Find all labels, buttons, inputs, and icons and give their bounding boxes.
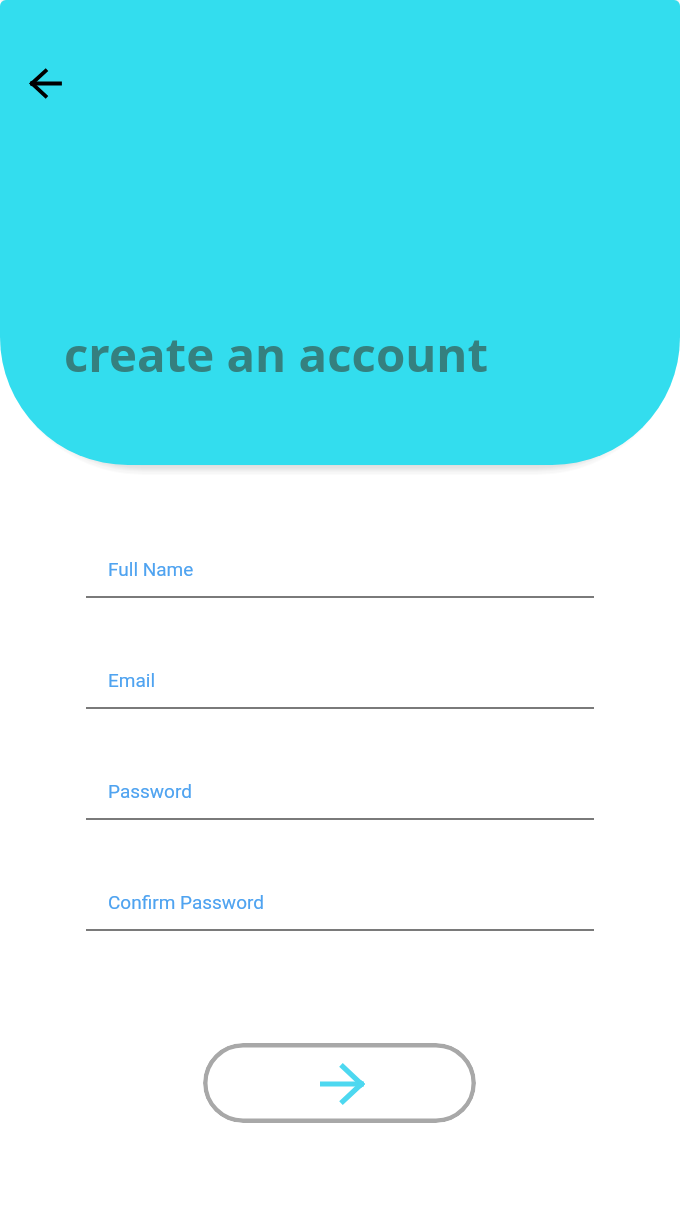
button[interactable]: Password xyxy=(86,780,594,820)
button[interactable]: Confirm Password xyxy=(86,891,594,931)
button[interactable]: Next xyxy=(203,1043,476,1123)
staticText: Full Name xyxy=(108,558,194,580)
button[interactable]: Back xyxy=(15,53,75,113)
button[interactable]: Email xyxy=(86,669,594,709)
staticText: create an account xyxy=(64,321,489,386)
button[interactable]: Full Name xyxy=(86,558,594,598)
staticText: Confirm Password xyxy=(108,891,264,913)
staticText: Email xyxy=(108,669,156,691)
staticText: Password xyxy=(108,780,192,802)
